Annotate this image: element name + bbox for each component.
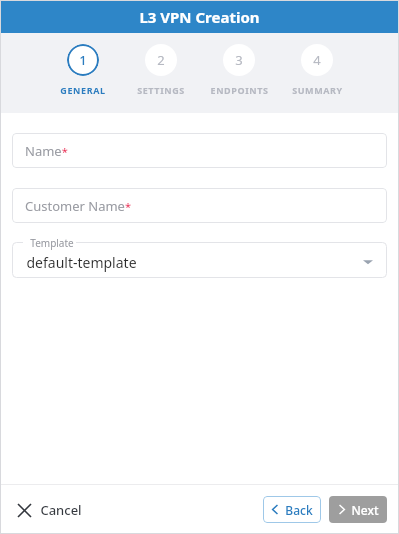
button[interactable]: 4: [278, 44, 356, 96]
button[interactable]: Template dropdown: [12, 242, 387, 278]
button[interactable]: Name*: [12, 133, 387, 168]
button[interactable]: 1: [44, 44, 122, 96]
staticText: Customer Name*: [25, 197, 131, 215]
button[interactable]: 3: [200, 44, 278, 96]
staticText: L3 VPN Creation: [139, 7, 260, 27]
staticText: Back: [285, 502, 313, 518]
staticText: 3: [235, 51, 243, 69]
staticText: 4: [313, 51, 321, 69]
button[interactable]: Cancel: [14, 495, 86, 525]
button[interactable]: 2: [122, 44, 200, 96]
staticText: GENERAL: [60, 84, 106, 96]
staticText: Name*: [25, 142, 68, 160]
button[interactable]: Next: [329, 496, 387, 523]
staticText: Template: [30, 236, 74, 250]
staticText: Cancel: [40, 501, 82, 519]
staticText: ENDPOINTS: [210, 84, 269, 96]
staticText: Next: [351, 502, 379, 518]
staticText: SUMMARY: [292, 84, 343, 96]
staticText: 2: [157, 51, 165, 69]
button[interactable]: Customer Name*: [12, 188, 387, 223]
button[interactable]: Back: [263, 496, 321, 523]
staticText: 1: [79, 51, 87, 69]
staticText: default-template: [26, 253, 137, 272]
staticText: SETTINGS: [137, 84, 185, 96]
